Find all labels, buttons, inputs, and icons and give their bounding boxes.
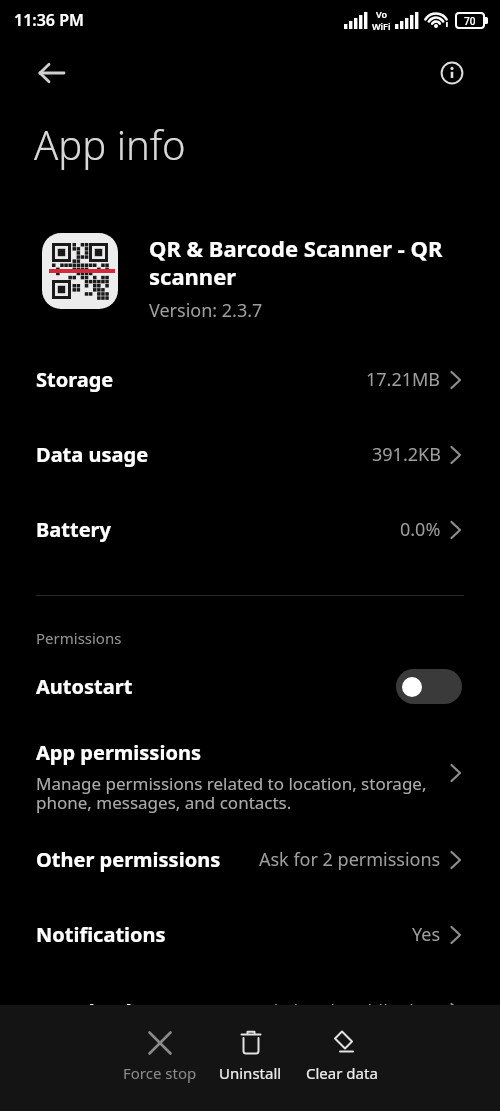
staticText: Other permissions — [36, 846, 221, 873]
button[interactable] — [39, 63, 65, 83]
button[interactable]: Battery — [0, 492, 500, 567]
button[interactable]: Notifications — [0, 897, 500, 972]
staticText: Restrict data usage — [36, 998, 229, 1025]
staticText: Version: 2.3.7 — [149, 298, 263, 323]
button[interactable]: Other permissions — [0, 822, 500, 897]
staticText: Wi-Fi and mobile data — [257, 999, 441, 1024]
staticText: App info — [34, 117, 186, 171]
staticText: Vo — [376, 8, 388, 20]
staticText: Uninstall — [219, 1063, 282, 1083]
staticText: Force stop — [123, 1063, 197, 1083]
staticText: Clear data — [306, 1063, 378, 1083]
staticText: 17.21MB — [366, 367, 441, 392]
button[interactable]: Storage — [0, 342, 500, 417]
staticText: Battery — [36, 516, 111, 543]
staticText: Manage permissions related to location, … — [36, 772, 440, 814]
button[interactable]: Data usage — [0, 417, 500, 492]
staticText: QR & Barcode Scanner - QR scanner — [149, 233, 470, 291]
staticText: 70 — [464, 14, 476, 28]
staticText: 11:36 PM — [14, 9, 84, 31]
button[interactable]: Restrict data usage — [0, 974, 500, 1049]
staticText: Ask for 2 permissions — [259, 847, 441, 872]
staticText: 391.2KB — [372, 442, 441, 467]
staticText: Autostart — [36, 673, 133, 700]
button[interactable] — [440, 61, 464, 85]
staticText: Storage — [36, 366, 114, 393]
staticText: Data usage — [36, 441, 149, 468]
staticText: App permissions — [36, 739, 201, 766]
button[interactable]: Autostart — [0, 648, 500, 724]
staticText: 0.0% — [400, 517, 441, 542]
button[interactable]: App permissions — [0, 724, 500, 822]
staticText: WiFi — [372, 20, 391, 32]
staticText: Yes — [412, 922, 441, 947]
button[interactable]: Force stop — [114, 1005, 205, 1083]
staticText: Permissions — [36, 628, 122, 648]
button[interactable]: Clear data — [296, 1005, 387, 1083]
staticText: Notifications — [36, 921, 166, 948]
button[interactable]: Uninstall — [205, 1005, 296, 1083]
